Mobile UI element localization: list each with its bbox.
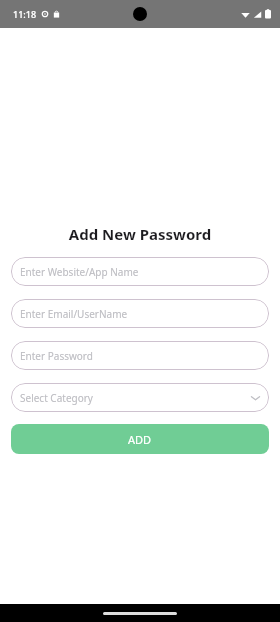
staticText: Add New Password [11, 224, 269, 244]
staticText: Select Category [20, 391, 93, 405]
button[interactable]: Enter Email/UserName [11, 299, 269, 328]
staticText: 11:18 [13, 8, 37, 20]
button[interactable]: ADD [11, 424, 269, 454]
button[interactable]: Enter Website/App Name [11, 257, 269, 286]
button[interactable]: Select Category [11, 383, 269, 412]
staticText: Enter Password [20, 349, 93, 363]
button[interactable]: Enter Password [11, 341, 269, 370]
staticText: Enter Email/UserName [20, 307, 128, 321]
staticText: Enter Website/App Name [20, 265, 139, 279]
staticText: ADD [128, 432, 152, 447]
